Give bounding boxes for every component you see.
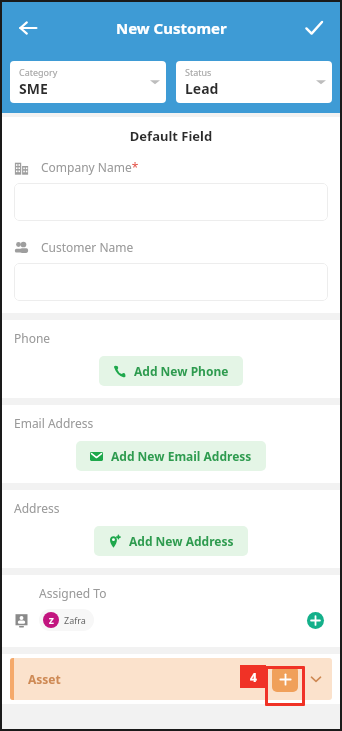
- staticText: Customer Name: [41, 239, 134, 255]
- button[interactable]: Expand: [306, 669, 326, 689]
- staticText: 4: [250, 669, 257, 685]
- button[interactable]: Add New Email Address: [76, 441, 266, 471]
- button[interactable]: Back: [8, 8, 48, 48]
- staticText: Add New Email Address: [111, 448, 252, 464]
- staticText: Z: [49, 615, 54, 626]
- button[interactable]: Status: [176, 61, 332, 103]
- staticText: New Customer: [116, 18, 227, 38]
- button[interactable]: [14, 263, 328, 301]
- staticText: Address: [14, 500, 60, 516]
- button[interactable]: Save: [294, 8, 334, 48]
- staticText: Zafra: [64, 614, 86, 626]
- staticText: Phone: [14, 330, 51, 346]
- button[interactable]: Add asset: [272, 666, 298, 692]
- button[interactable]: Asset: [10, 658, 332, 700]
- staticText: Assigned To: [39, 585, 107, 601]
- staticText: Asset: [28, 671, 61, 687]
- button[interactable]: Add New Address: [94, 526, 248, 556]
- staticText: Company Name*: [41, 159, 139, 175]
- button[interactable]: [14, 183, 328, 221]
- button[interactable]: Add New Phone: [99, 356, 243, 386]
- staticText: Lead: [185, 79, 219, 98]
- staticText: Add New Address: [129, 533, 234, 549]
- staticText: Status: [185, 66, 212, 78]
- staticText: Email Address: [14, 415, 94, 431]
- staticText: Default Field: [0, 127, 342, 145]
- button[interactable]: Add assignee: [302, 607, 328, 633]
- staticText: Category: [19, 66, 58, 78]
- button[interactable]: Category: [10, 61, 166, 103]
- staticText: Add New Phone: [134, 363, 229, 379]
- staticText: SME: [19, 79, 48, 98]
- button[interactable]: Z: [39, 609, 94, 631]
